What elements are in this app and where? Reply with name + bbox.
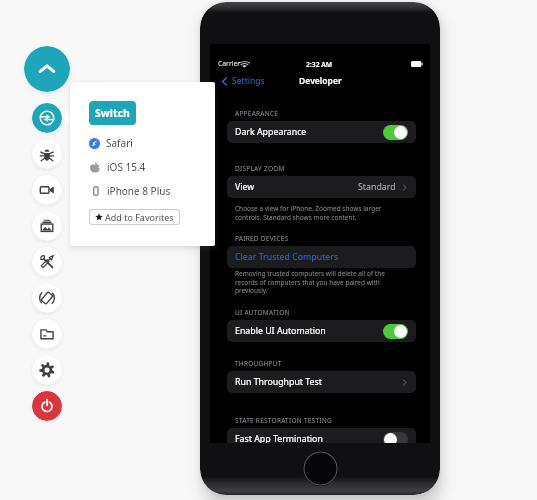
staticText: Add to Favorites <box>105 211 174 223</box>
button[interactable]: Fast App Termination <box>227 428 416 443</box>
staticText: Developer <box>299 75 342 87</box>
staticText: Switch <box>95 106 130 120</box>
button[interactable]: Switch device <box>32 103 62 133</box>
button[interactable]: Report a bug <box>32 139 62 169</box>
button[interactable]: Screenshot <box>32 211 62 241</box>
staticText: Choose a view for iPhone. Zoomed shows l… <box>235 204 382 222</box>
button[interactable]: Settings <box>219 74 266 88</box>
staticText: View <box>235 181 255 193</box>
button[interactable]: Local files <box>32 319 62 349</box>
staticText: Carrier <box>218 59 241 68</box>
staticText: PAIRED DEVICES <box>235 234 289 243</box>
staticText: Settings <box>232 75 265 87</box>
staticText: Removing trusted computers will delete a… <box>235 269 385 295</box>
staticText: Safari <box>106 136 133 150</box>
button[interactable]: Stop session <box>32 391 62 421</box>
staticText: Standard <box>358 181 396 193</box>
button[interactable]: Add to Favorites <box>90 210 179 224</box>
button[interactable]: Collapse toolbar <box>24 46 70 92</box>
button[interactable]: Home <box>303 451 338 486</box>
staticText: Dark Appearance <box>235 126 307 138</box>
button[interactable]: Run Throughput Test <box>227 371 416 393</box>
staticText: iPhone 8 Plus <box>107 184 171 198</box>
staticText: THROUGHPUT <box>235 359 282 368</box>
staticText: Clear Trusted Computers <box>235 251 339 263</box>
staticText: iOS 15.4 <box>107 160 146 174</box>
button[interactable]: Dark Appearance <box>227 121 416 143</box>
staticText: Fast App Termination <box>235 433 323 443</box>
staticText: STATE RESTORATION TESTING <box>235 416 332 425</box>
staticText: UI AUTOMATION <box>235 308 290 317</box>
button[interactable]: Clear Trusted Computers <box>227 246 416 268</box>
button[interactable]: Switch <box>89 101 136 125</box>
button[interactable]: Developer tools <box>32 247 62 277</box>
staticText: Enable UI Automation <box>235 325 326 337</box>
staticText: Run Throughput Test <box>235 376 322 388</box>
button[interactable]: Settings <box>32 355 62 385</box>
button[interactable]: Record video <box>32 175 62 205</box>
button[interactable]: View <box>227 176 416 198</box>
button[interactable]: Rotate device <box>32 283 62 313</box>
button[interactable]: Enable UI Automation <box>227 320 416 342</box>
staticText: 2:32 AM <box>306 60 333 69</box>
staticText: APPEARANCE <box>235 109 279 118</box>
staticText: DISPLAY ZOOM <box>235 164 285 173</box>
